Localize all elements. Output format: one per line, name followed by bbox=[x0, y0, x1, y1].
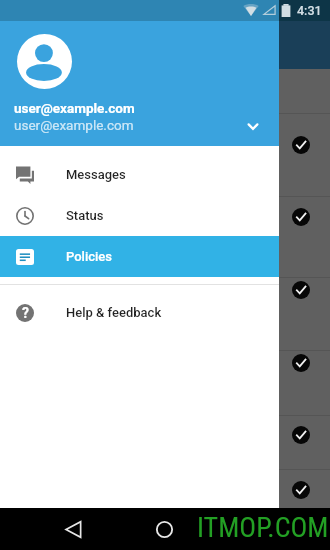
staticText: ? bbox=[22, 305, 29, 321]
button[interactable]: Status bbox=[0, 195, 279, 236]
staticText: Status bbox=[66, 208, 104, 223]
staticText: ITMOP.COM bbox=[197, 511, 329, 544]
button[interactable]: Messages bbox=[0, 154, 279, 195]
button[interactable]: ? bbox=[0, 292, 279, 333]
staticText: Help & feedback bbox=[66, 305, 162, 320]
staticText: user@example.com bbox=[14, 117, 134, 133]
button[interactable]: Policies bbox=[0, 236, 279, 277]
staticText: user@example.com bbox=[14, 100, 135, 116]
button[interactable]: Show account list bbox=[243, 115, 263, 135]
staticText: 4:31 bbox=[297, 3, 322, 18]
staticText: Policies bbox=[66, 249, 112, 264]
button[interactable]: Home bbox=[156, 521, 173, 538]
button[interactable]: Back bbox=[65, 521, 82, 538]
staticText: Messages bbox=[66, 167, 126, 182]
